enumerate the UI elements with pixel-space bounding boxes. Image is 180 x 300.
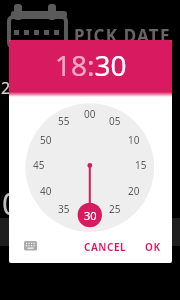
staticText: 30 bbox=[84, 208, 97, 223]
staticText: 20 bbox=[128, 184, 140, 198]
staticText: PICK DATE bbox=[74, 24, 171, 47]
button[interactable]: PICK DATE bbox=[74, 24, 171, 47]
staticText: CANCEL bbox=[84, 240, 127, 254]
staticText: 40 bbox=[40, 184, 52, 198]
staticText: 10 bbox=[128, 133, 140, 147]
staticText: 05 bbox=[109, 114, 121, 128]
staticText: 18:30 bbox=[55, 46, 127, 84]
staticText: 50 bbox=[40, 133, 52, 147]
staticText: 55 bbox=[58, 114, 70, 128]
staticText: 35 bbox=[58, 202, 70, 216]
button[interactable]: CANCEL bbox=[83, 236, 127, 258]
staticText: 00 bbox=[84, 107, 96, 121]
staticText: 0 bbox=[2, 183, 20, 224]
staticText: 15 bbox=[135, 158, 147, 172]
staticText: OK bbox=[145, 240, 161, 254]
button[interactable]: 30 bbox=[80, 207, 100, 223]
staticText: 45 bbox=[33, 158, 45, 172]
staticText: 25 bbox=[109, 202, 121, 216]
staticText: 2 bbox=[1, 77, 11, 99]
button[interactable] bbox=[22, 239, 40, 253]
button[interactable]: OK bbox=[140, 236, 166, 258]
